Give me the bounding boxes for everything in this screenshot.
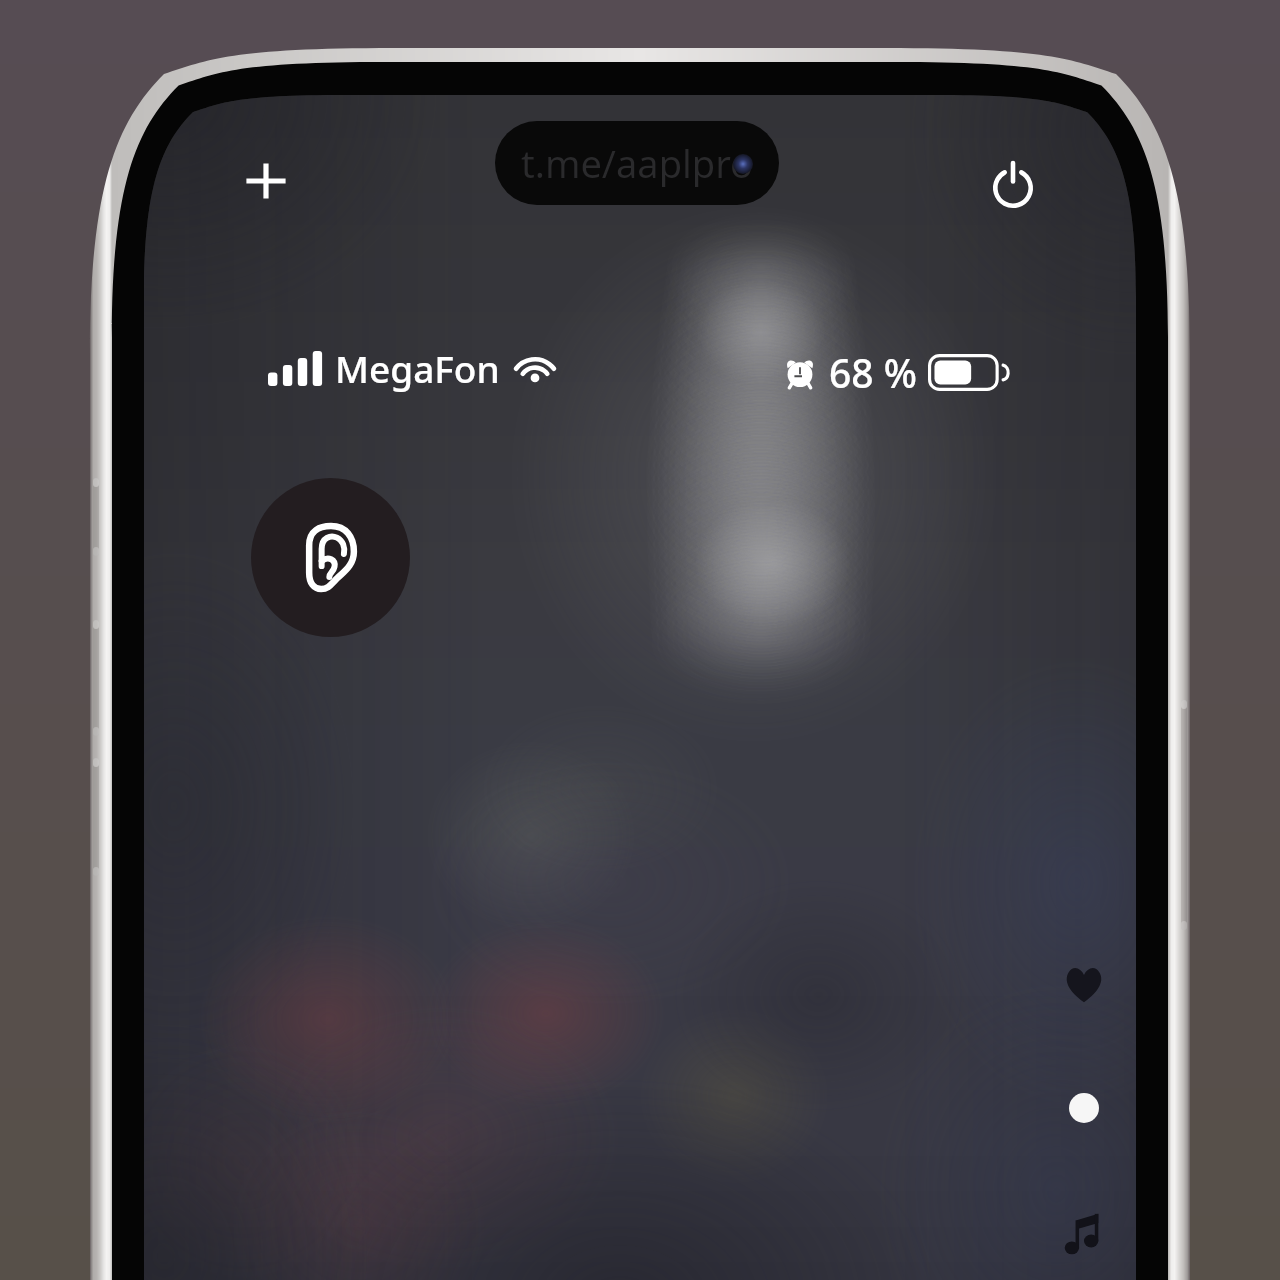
staticText: 68 % [829, 346, 917, 399]
staticText: t.me/aaplpro [521, 137, 754, 189]
staticText: MegaFon [335, 343, 500, 393]
button[interactable]: Hearing accessibility [251, 478, 410, 637]
button[interactable]: Like [1064, 966, 1104, 1003]
button[interactable]: Add [226, 141, 306, 221]
button[interactable]: Profile [1069, 1093, 1099, 1123]
button[interactable]: Power [973, 144, 1053, 224]
button[interactable]: Sound [1064, 1213, 1099, 1256]
